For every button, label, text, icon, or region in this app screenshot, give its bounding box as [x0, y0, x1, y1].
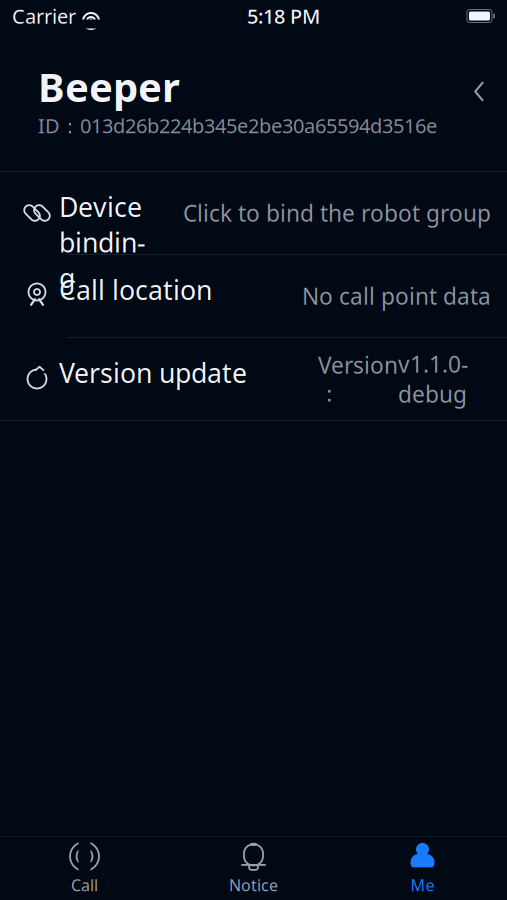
staticText: No call point data	[302, 281, 491, 311]
staticText: ID：	[38, 112, 80, 139]
staticText: Carrier	[12, 3, 76, 29]
button[interactable]: Call location	[0, 255, 507, 337]
staticText: Me	[410, 874, 434, 896]
button[interactable]: Notice	[169, 837, 338, 899]
staticText: v1.1.0-debug	[398, 349, 468, 409]
staticText: Call location	[59, 272, 212, 307]
staticText: Notice	[229, 874, 278, 896]
button[interactable]: Version update	[0, 338, 507, 420]
staticText: Device binding	[59, 189, 146, 295]
staticText: Version update	[59, 355, 247, 390]
button[interactable]: Call	[0, 837, 169, 899]
staticText: Beeper	[38, 60, 180, 113]
staticText: Version：	[318, 350, 398, 408]
button[interactable]: Device binding	[0, 172, 507, 254]
staticText: 5:18 PM	[247, 3, 320, 29]
staticText: Click to bind the robot group	[183, 198, 491, 228]
button[interactable]: Me	[338, 837, 507, 899]
staticText: 013d26b224b345e2be30a65594d3516e	[80, 112, 437, 139]
button[interactable]: Beeper	[0, 32, 507, 171]
staticText: Call	[71, 874, 98, 896]
